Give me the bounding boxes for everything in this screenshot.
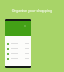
button[interactable] [5, 56, 31, 61]
button[interactable] [5, 51, 31, 56]
button[interactable] [5, 46, 31, 51]
staticText: Organise your shopping [0, 8, 64, 13]
button[interactable] [5, 41, 31, 46]
